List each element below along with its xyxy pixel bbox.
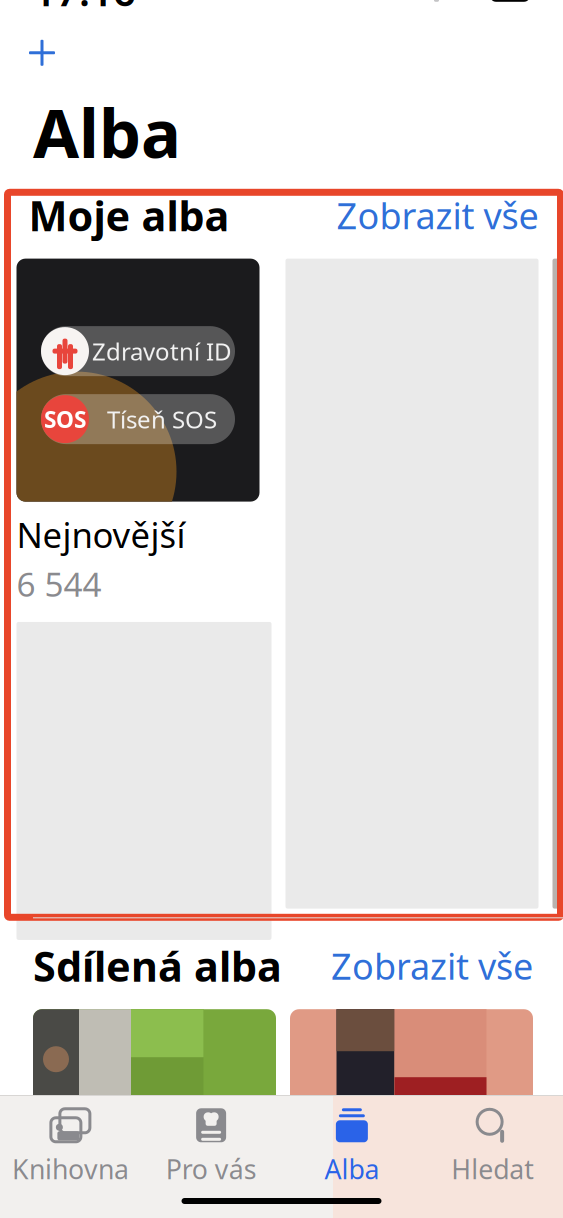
staticText: Pro vás [166,1151,257,1187]
button[interactable]: Alba [281,1107,422,1185]
button[interactable]: Hledat [422,1107,563,1185]
button[interactable]: Pro vás [141,1107,282,1185]
staticText: 6 544 [16,562,101,606]
staticText: Tíseň SOS [107,403,217,435]
staticText: SOS [44,404,86,434]
staticText: Alba [33,88,181,176]
button[interactable]: Zobrazit vše [331,942,533,990]
staticText: Alba [324,1151,379,1187]
staticText: Zdravotní ID [92,335,232,367]
staticText: Sdílená alba [33,938,282,993]
button[interactable]: Nové album [15,26,69,80]
staticText: Moje alba [28,188,229,243]
staticText: Nejnovější [16,512,185,558]
button[interactable]: Zobrazit vše [336,191,538,239]
staticText: Zobrazit vše [336,191,538,239]
staticText: Hledat [451,1151,534,1187]
button[interactable]: Knihovna [0,1107,141,1185]
staticText: Zobrazit vše [331,942,533,990]
staticText: Knihovna [12,1151,129,1187]
staticText: 17:16 [33,0,136,17]
